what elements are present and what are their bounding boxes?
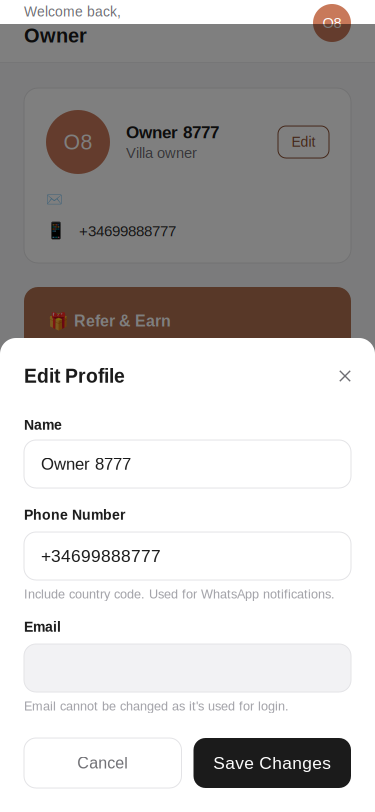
staticText: +34699888777 [79,223,176,239]
staticText: Save Changes [213,753,331,773]
staticText: ✉️ [46,191,63,207]
staticText: +34699888777 [41,546,161,566]
button[interactable]: 🎁 [24,287,351,437]
staticText: Email cannot be changed as it's used for… [24,699,289,713]
staticText: Owner 8777 [41,455,131,473]
staticText: Owner 8777 [126,123,219,142]
button[interactable]: Save Changes [193,738,351,788]
staticText: 📱 [46,222,66,240]
button[interactable]: Close [317,362,351,390]
button[interactable]: Account [313,4,351,42]
staticText: Include country code. Used for WhatsApp … [24,587,335,601]
staticText: Refer & Earn [74,312,171,330]
staticText: Owner [24,24,87,47]
staticText: Name [24,417,62,433]
staticText: 🎁 [48,311,69,331]
staticText: Email [24,619,61,635]
staticText: O8 [63,130,92,154]
staticText: Edit [291,134,315,150]
staticText: Cancel [77,754,128,772]
staticText: Edit Profile [24,365,125,387]
staticText: Phone Number [24,507,125,523]
staticText: O8 [322,15,341,31]
button[interactable]: Cancel [24,738,181,788]
staticText: Villa owner [126,145,197,161]
button[interactable]: Edit [278,126,329,158]
staticText: Welcome back, [24,4,121,19]
